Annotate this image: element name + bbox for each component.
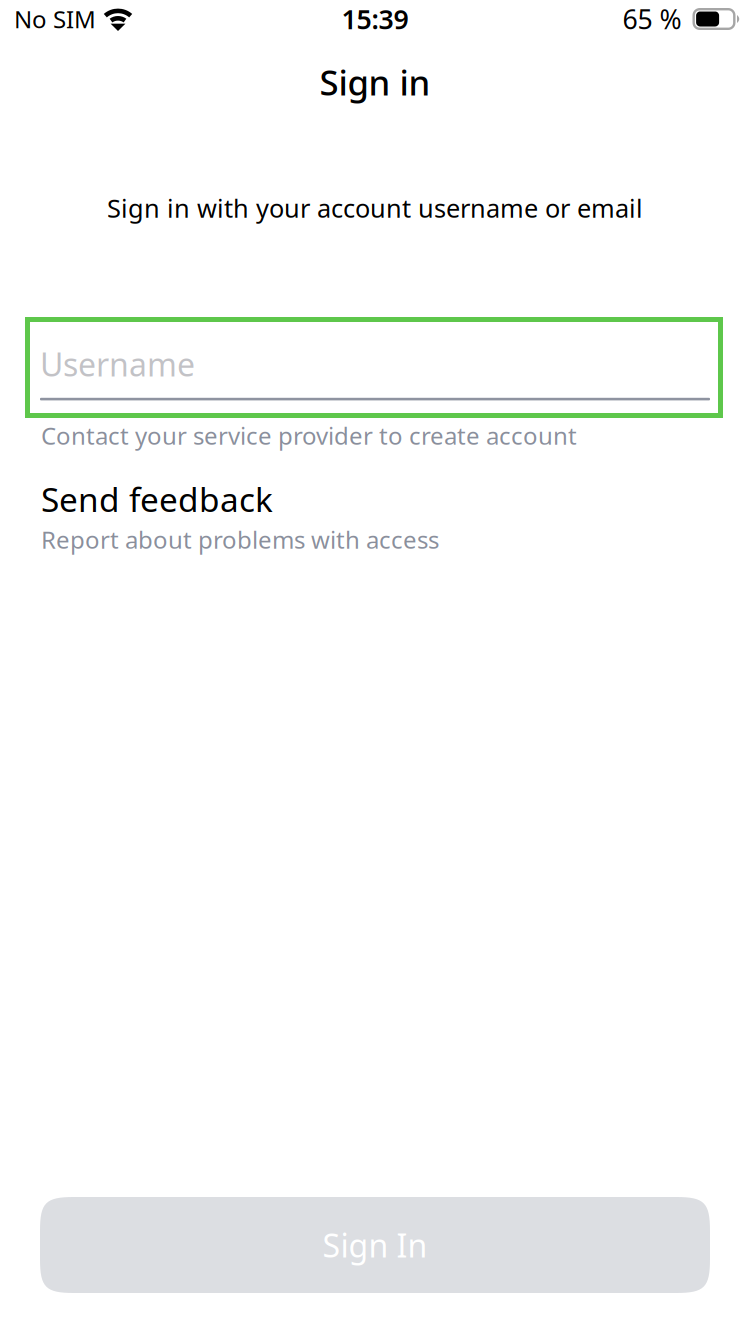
staticText: Sign in with your account username or em… — [107, 191, 643, 225]
staticText: No SIM — [14, 3, 96, 35]
staticText: Report about problems with access — [41, 524, 439, 555]
button[interactable]: Send feedback — [41, 485, 711, 552]
staticText: Send feedback — [41, 477, 273, 521]
staticText: Sign In — [322, 1224, 427, 1266]
button[interactable]: Username — [25, 317, 723, 418]
button[interactable]: Sign In — [40, 1197, 710, 1293]
staticText: 65 % — [622, 1, 681, 37]
staticText: Sign in — [319, 59, 430, 105]
staticText: Username — [40, 343, 195, 385]
staticText: 15:39 — [341, 1, 408, 37]
staticText: Contact your service provider to create … — [41, 420, 577, 451]
